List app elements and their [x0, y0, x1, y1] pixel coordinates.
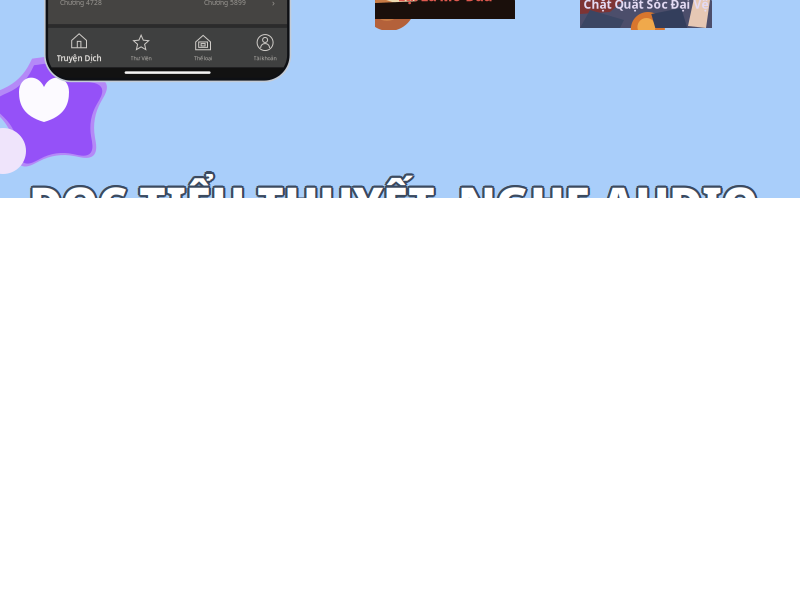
staticText: Thư Viện — [131, 55, 152, 62]
staticText: ĐỌC TIỂU THUYẾT, NGHE AUDIO — [27, 173, 756, 233]
staticText: Truyện Dịch — [57, 53, 102, 63]
staticText: Chặt Quật Sóc Đại Vệ — [583, 0, 708, 12]
staticText: ĐỌC TIỂU THUYẾT, NGHE AUDIO — [31, 173, 760, 233]
button[interactable]: Thư Viện — [110, 31, 172, 65]
staticText: ĐỌC TIỂU THUYẾT, NGHE AUDIO — [31, 171, 760, 232]
button[interactable]: Lại Là Mở Đầu — [375, 0, 515, 30]
staticText: ĐỌC TIỂU THUYẾT, NGHE AUDIO — [29, 175, 758, 235]
staticText: Tài khoản — [254, 55, 277, 62]
button[interactable]: Thể loại — [172, 31, 234, 65]
staticText: › — [272, 0, 275, 9]
staticText: ĐỌC TIỂU THUYẾT, NGHE AUDIO — [27, 171, 756, 232]
staticText: Chương 5899 — [204, 0, 246, 7]
button[interactable]: Chặt Quật Sóc Đại Vệ — [580, 0, 712, 30]
staticText: ĐỌC TIỂU THUYẾT, NGHE AUDIO — [27, 175, 756, 235]
staticText: Chương 4728 — [60, 0, 102, 7]
staticText: ĐỌC TIỂU THUYẾT, NGHE AUDIO — [31, 175, 760, 235]
button[interactable]: Truyện Dịch — [48, 31, 110, 65]
staticText: ĐỌC TIỂU THUYẾT, NGHE AUDIO — [29, 173, 758, 233]
staticText: ĐỌC TIỂU THUYẾT, NGHE AUDIO — [29, 171, 758, 231]
staticText: Thể loại — [194, 55, 212, 62]
staticText: Lại Là Mở Đầu — [397, 0, 492, 5]
button[interactable]: Tài khoản — [234, 31, 296, 65]
